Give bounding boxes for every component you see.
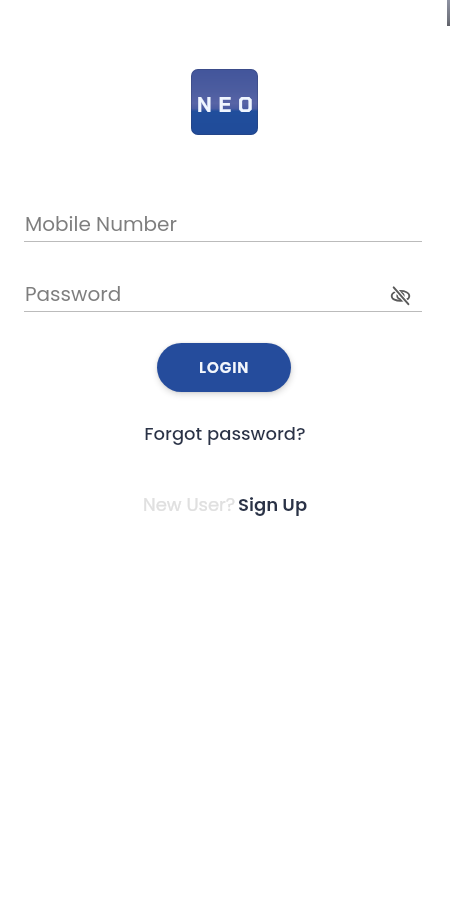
staticText: Sign Up	[238, 492, 308, 517]
button[interactable]: Password	[24, 274, 422, 312]
staticText: New User?	[143, 492, 236, 517]
button[interactable]: NEO logo	[191, 69, 258, 135]
button[interactable]: Forgot password?	[0, 418, 450, 448]
staticText: Mobile Number	[25, 210, 177, 238]
staticText: Forgot password?	[144, 421, 306, 446]
button[interactable]: LOGIN	[157, 343, 291, 392]
staticText: Password	[25, 280, 122, 308]
staticText: LOGIN	[199, 357, 250, 378]
button[interactable]: Sign Up	[238, 492, 308, 517]
staticText: NEO	[197, 91, 258, 118]
button[interactable]: Show password	[386, 281, 414, 309]
button[interactable]: Mobile Number	[24, 204, 422, 242]
